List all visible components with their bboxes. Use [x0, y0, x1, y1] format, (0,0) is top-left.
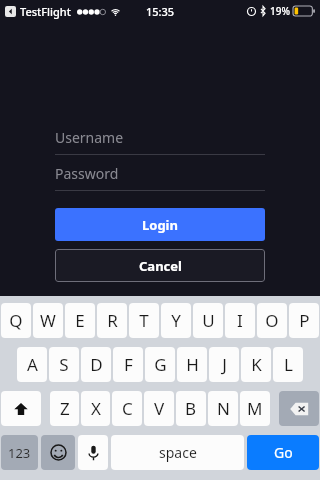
staticText: K — [251, 353, 262, 376]
button[interactable]: Dictate — [78, 435, 108, 470]
staticText: Y — [171, 309, 181, 332]
staticText: H — [186, 353, 199, 376]
button[interactable]: Z — [50, 391, 79, 426]
staticText: Go — [274, 443, 293, 462]
button[interactable]: G — [145, 347, 175, 382]
button[interactable]: R — [97, 303, 127, 338]
button[interactable]: T — [129, 303, 159, 338]
button[interactable]: Login — [55, 208, 265, 241]
staticText: X — [91, 397, 101, 420]
staticText: 123 — [8, 444, 31, 462]
staticText: W — [40, 309, 56, 332]
staticText: G — [154, 353, 167, 376]
button[interactable]: K — [241, 347, 271, 382]
button[interactable]: Go — [247, 435, 319, 470]
button[interactable]: Backspace — [279, 391, 319, 426]
staticText: P — [299, 309, 310, 332]
button[interactable]: Password — [55, 156, 265, 191]
staticText: Cancel — [139, 257, 182, 275]
staticText: space — [159, 443, 197, 462]
button[interactable]: M — [240, 391, 270, 426]
button[interactable]: O — [257, 303, 287, 338]
button[interactable]: I — [225, 303, 255, 338]
staticText: V — [154, 397, 165, 420]
button[interactable]: Q — [1, 303, 31, 338]
staticText: F — [124, 353, 133, 376]
staticText: TestFlight — [20, 4, 71, 19]
button[interactable]: B — [176, 391, 206, 426]
staticText: T — [139, 309, 149, 332]
staticText: A — [27, 353, 38, 376]
button[interactable]: Emoji — [41, 435, 75, 470]
staticText: N — [217, 397, 230, 420]
staticText: C — [122, 397, 133, 420]
button[interactable]: X — [81, 391, 110, 426]
staticText: Z — [60, 397, 70, 420]
button[interactable]: J — [209, 347, 239, 382]
staticText: Password — [55, 164, 119, 183]
button[interactable]: 123 — [1, 435, 38, 470]
staticText: D — [90, 353, 103, 376]
button[interactable]: N — [208, 391, 238, 426]
staticText: L — [284, 353, 293, 376]
staticText: Login — [142, 216, 178, 234]
staticText: M — [247, 397, 263, 420]
button[interactable]: Username — [55, 120, 265, 155]
staticText: S — [59, 353, 69, 376]
button[interactable]: P — [289, 303, 319, 338]
button[interactable]: A — [17, 347, 47, 382]
button[interactable]: F — [113, 347, 143, 382]
staticText: I — [237, 309, 243, 332]
button[interactable]: space — [111, 435, 244, 470]
button[interactable]: V — [144, 391, 174, 426]
button[interactable]: D — [81, 347, 111, 382]
staticText: E — [75, 309, 85, 332]
staticText: 19% — [270, 4, 290, 18]
button[interactable]: U — [193, 303, 223, 338]
button[interactable]: C — [112, 391, 142, 426]
staticText: B — [185, 397, 197, 420]
staticText: O — [265, 309, 279, 332]
staticText: U — [202, 309, 215, 332]
button[interactable]: E — [65, 303, 95, 338]
staticText: Q — [9, 309, 23, 332]
staticText: J — [222, 353, 227, 376]
button[interactable]: Cancel — [55, 249, 265, 282]
staticText: R — [107, 309, 118, 332]
button[interactable]: Shift — [1, 391, 41, 426]
button[interactable]: S — [49, 347, 79, 382]
staticText: 15:35 — [146, 4, 175, 19]
button[interactable]: W — [33, 303, 63, 338]
staticText: Username — [55, 128, 124, 147]
button[interactable]: Y — [161, 303, 191, 338]
button[interactable]: L — [273, 347, 303, 382]
button[interactable]: H — [177, 347, 207, 382]
